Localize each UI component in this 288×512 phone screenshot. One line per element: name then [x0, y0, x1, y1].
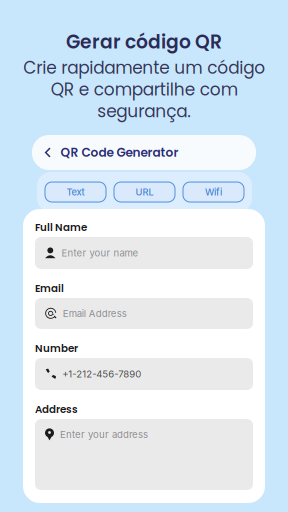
staticText: Email Address — [63, 308, 127, 319]
button[interactable]: Enter your address — [35, 419, 253, 490]
staticText: Gerar código QR — [66, 29, 222, 55]
staticText: Enter your address — [60, 429, 148, 440]
staticText: Number — [35, 341, 78, 356]
button[interactable]: Wifi — [183, 182, 244, 202]
staticText: Wifi — [205, 186, 222, 198]
staticText: Address — [35, 402, 78, 417]
staticText: Email — [35, 281, 64, 296]
button[interactable]: +1-212-456-7890 — [35, 358, 253, 390]
staticText: +1-212-456-7890 — [62, 368, 141, 380]
staticText: Full Name — [35, 220, 87, 235]
staticText: QR Code Generator — [61, 144, 179, 161]
staticText: Text — [66, 186, 84, 198]
button[interactable]: Email Address — [35, 298, 253, 329]
button[interactable]: Enter your name — [35, 237, 253, 269]
staticText: URL — [135, 186, 153, 198]
button[interactable]: QR Code Generator — [32, 135, 256, 170]
button[interactable]: URL — [114, 182, 175, 202]
staticText: Crie rapidamente um código QR e comparti… — [23, 56, 265, 123]
button[interactable]: Text — [45, 182, 106, 202]
staticText: Enter your name — [62, 247, 139, 259]
